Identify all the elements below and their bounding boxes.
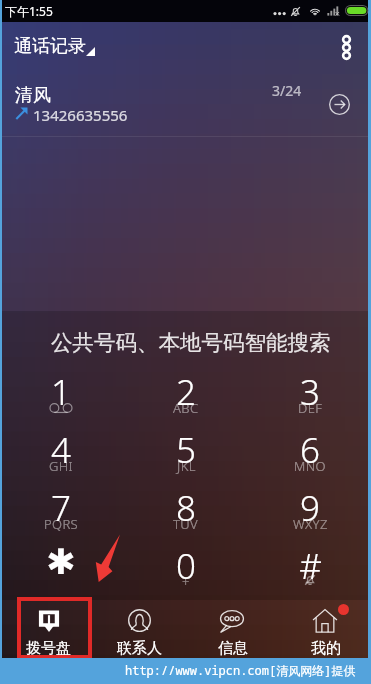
staticText: DEF xyxy=(298,399,323,417)
staticText: 6 xyxy=(300,426,320,474)
staticText: 通话记录 xyxy=(14,35,86,58)
staticText: 清风 xyxy=(15,84,51,107)
staticText: JKL xyxy=(177,457,196,475)
button[interactable]: 我的 xyxy=(274,600,365,658)
staticText: + xyxy=(182,573,190,591)
staticText: WXYZ xyxy=(293,515,328,533)
staticText: 13426635556 xyxy=(33,105,128,125)
button[interactable]: 2 xyxy=(142,351,230,409)
button[interactable]: 通话记录 xyxy=(4,31,105,62)
button[interactable]: 7 xyxy=(17,467,105,525)
button[interactable]: 8 xyxy=(142,467,230,525)
button[interactable]: 公共号码、本地号码智能搜索 xyxy=(2,311,368,366)
staticText: 公共号码、本地号码智能搜索 xyxy=(51,329,331,356)
staticText: 4 xyxy=(51,426,71,474)
staticText: 8 xyxy=(176,484,196,532)
staticText: http://www.vipcn.com[清风网络]提供 xyxy=(125,662,356,678)
button[interactable]: 5 xyxy=(142,409,230,467)
button[interactable]: Call details xyxy=(324,89,354,119)
staticText: MNO xyxy=(294,457,326,475)
staticText: 联系人 xyxy=(117,639,162,658)
button[interactable]: 拨号盘 xyxy=(2,600,93,658)
button[interactable]: More options xyxy=(324,25,368,69)
staticText: 2 xyxy=(176,368,196,416)
staticText: 我的 xyxy=(311,639,341,658)
button[interactable]: 信息 xyxy=(183,600,274,658)
button[interactable]: 0 xyxy=(142,525,230,583)
staticText: 信息 xyxy=(218,639,248,658)
button[interactable]: 1 xyxy=(17,351,105,409)
staticText: 拨号盘 xyxy=(26,639,71,658)
staticText: 3/24 xyxy=(272,81,302,100)
staticText: # xyxy=(299,542,322,590)
button[interactable]: # xyxy=(266,525,354,583)
staticText: 1 xyxy=(51,368,71,416)
staticText: TUV xyxy=(173,515,199,533)
staticText: 下午1:55 xyxy=(5,3,53,19)
staticText: 5 xyxy=(176,426,196,474)
button[interactable]: 6 xyxy=(266,409,354,467)
button[interactable]: 清风 xyxy=(2,67,368,137)
staticText: 0 xyxy=(176,542,196,590)
button[interactable]: 联系人 xyxy=(93,600,184,658)
staticText: ✱ xyxy=(46,542,76,583)
button[interactable]: 9 xyxy=(266,467,354,525)
staticText: GHI xyxy=(49,457,74,475)
staticText: ABC xyxy=(173,399,199,417)
button[interactable]: 3 xyxy=(266,351,354,409)
staticText: PQRS xyxy=(44,515,79,533)
staticText: 3 xyxy=(300,368,320,416)
button[interactable]: ✱ xyxy=(17,525,105,583)
staticText: 7 xyxy=(51,484,71,532)
button[interactable]: 4 xyxy=(17,409,105,467)
staticText: 9 xyxy=(300,484,320,532)
